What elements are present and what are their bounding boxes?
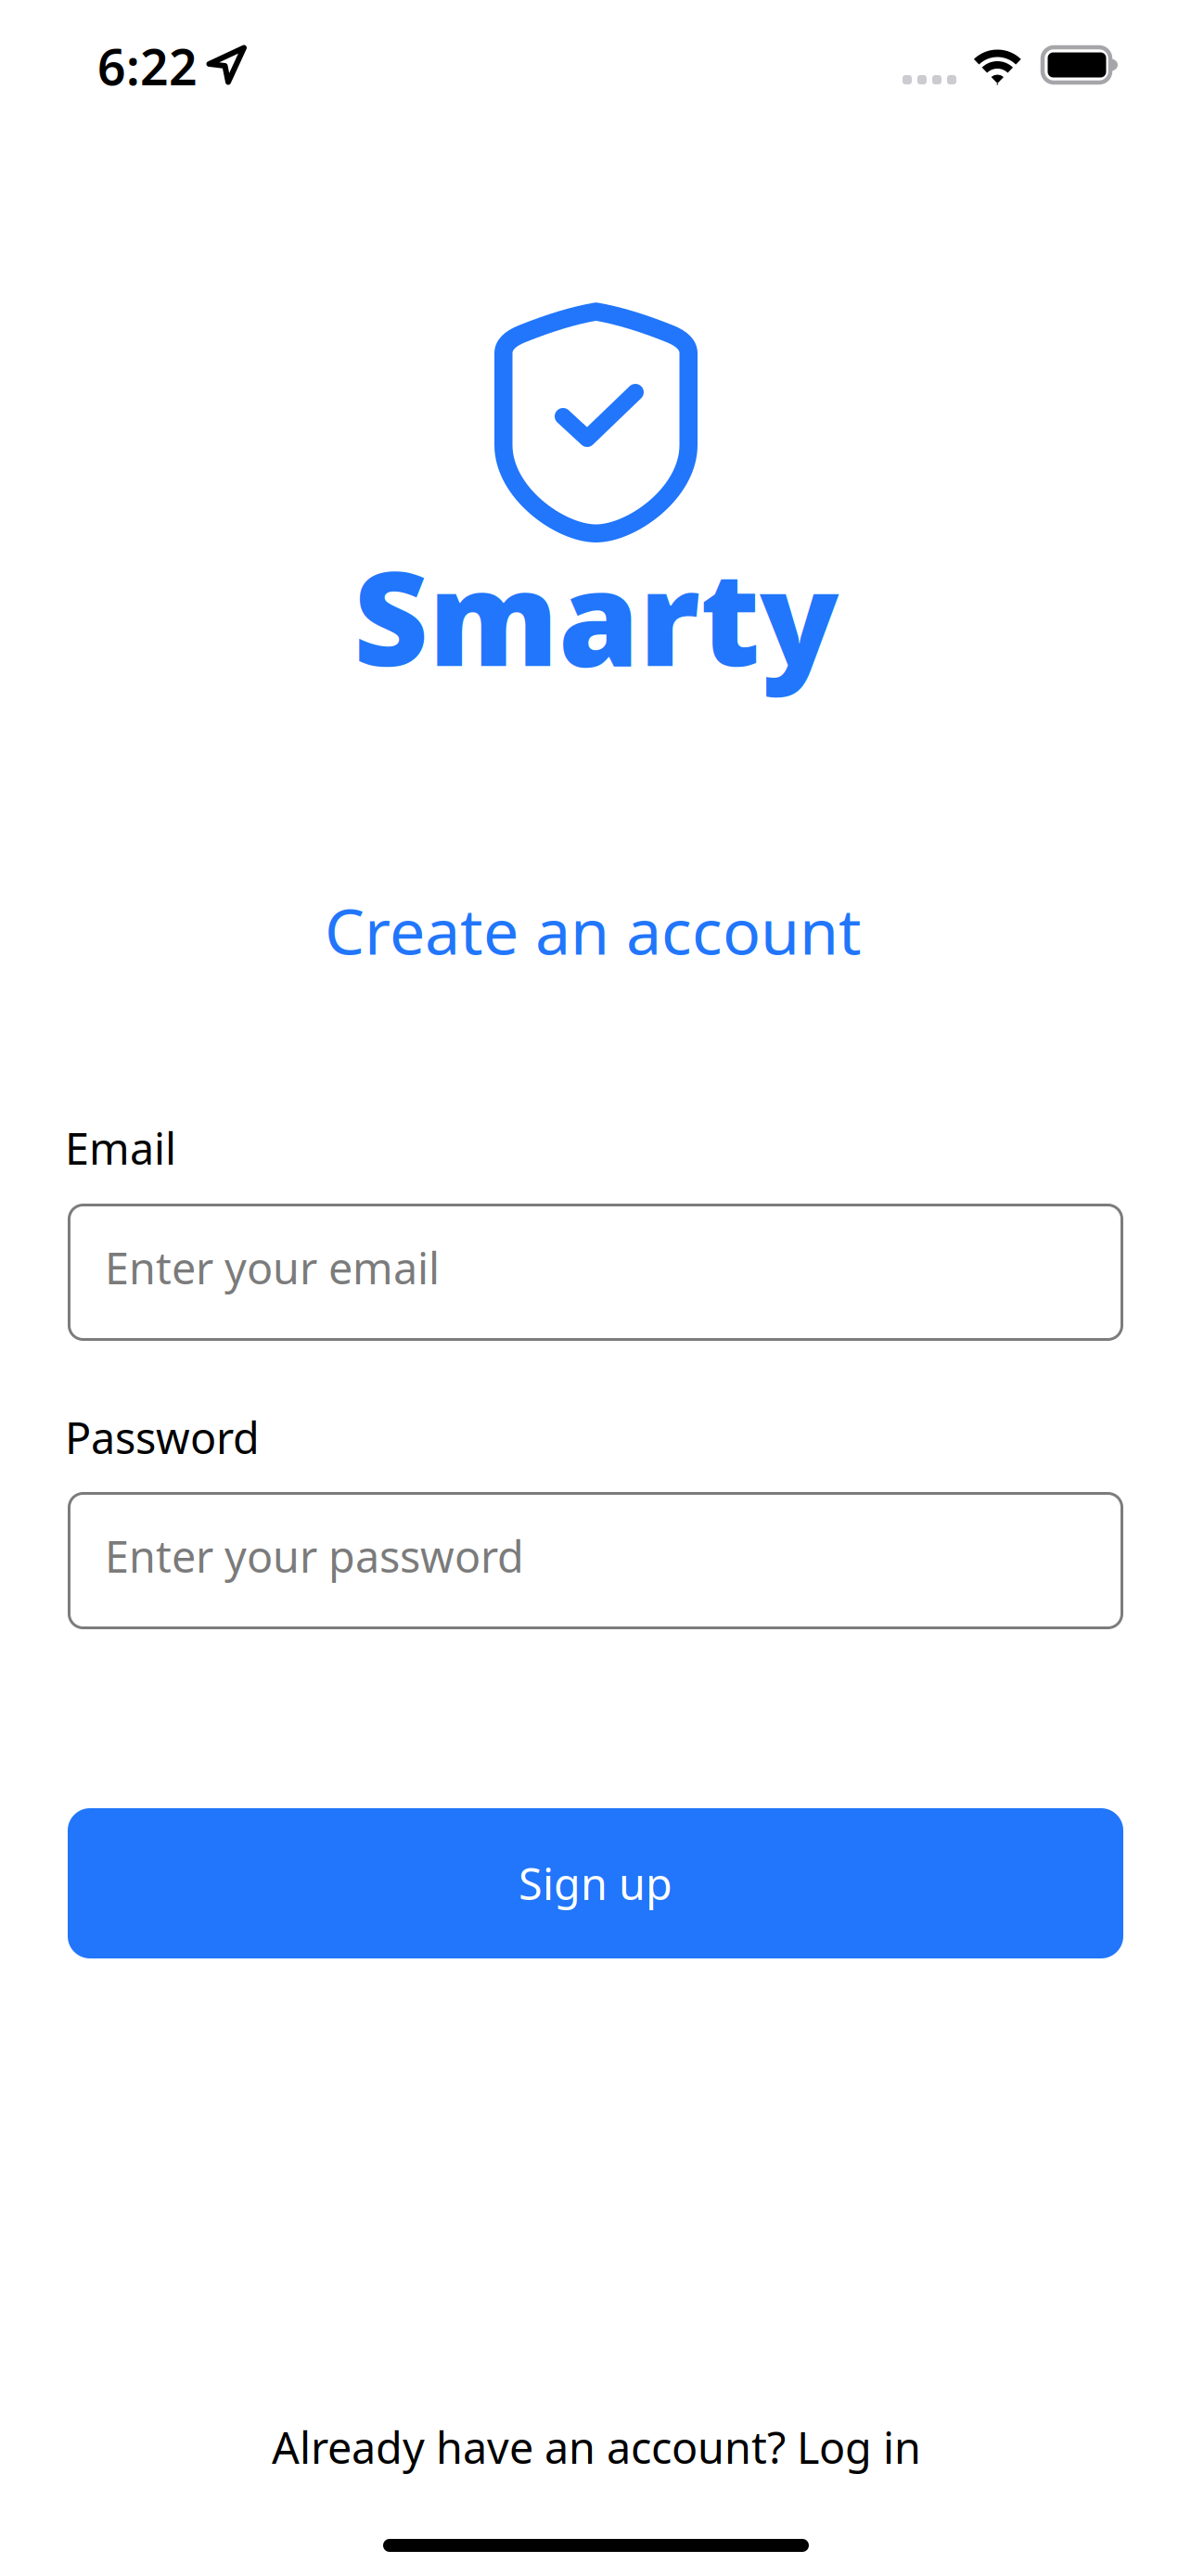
staticText: Sign up — [519, 1855, 672, 1912]
staticText: Enter your password — [105, 1527, 524, 1585]
staticText: Enter your email — [105, 1239, 440, 1296]
staticText: Smarty — [353, 529, 839, 702]
button[interactable]: Enter your email — [68, 1204, 1123, 1341]
button[interactable]: Enter your password — [68, 1492, 1123, 1629]
button[interactable]: Already have an account? Log in — [272, 2418, 921, 2476]
button[interactable]: Sign up — [68, 1808, 1123, 1958]
staticText: Password — [65, 1409, 260, 1466]
staticText: 6:22 — [97, 33, 198, 99]
staticText: Create an account — [325, 888, 862, 972]
staticText: Email — [65, 1119, 176, 1177]
staticText: Already have an account? Log in — [272, 2418, 921, 2476]
